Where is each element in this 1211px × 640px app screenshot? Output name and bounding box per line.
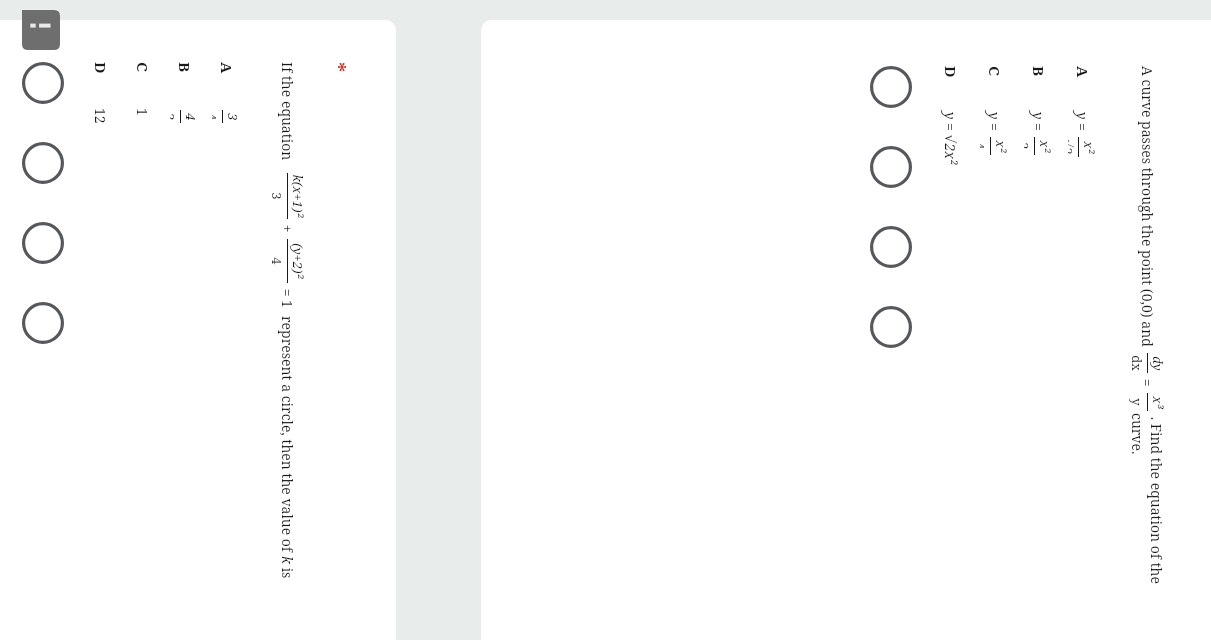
staticText: 4 — [268, 257, 286, 265]
button[interactable]: A — [1068, 66, 1098, 159]
staticText: 3 — [224, 113, 242, 121]
staticText: = 1 — [278, 285, 297, 308]
staticText: C — [985, 66, 1005, 112]
staticText: y = — [1073, 112, 1092, 135]
button[interactable]: A — [212, 62, 242, 125]
button[interactable]: D — [936, 66, 966, 165]
staticText: . Find the equation of the curve. — [1128, 413, 1166, 616]
staticText: x² — [1036, 140, 1054, 153]
staticText: √2 — [1068, 139, 1077, 155]
staticText: B — [1029, 66, 1049, 112]
button[interactable]: D — [86, 62, 116, 124]
staticText: y — [1128, 398, 1146, 406]
button[interactable]: Select option — [22, 302, 64, 344]
button[interactable]: Select option — [22, 222, 64, 264]
staticText: = — [1138, 375, 1157, 391]
staticText: y = — [1029, 112, 1048, 135]
staticText: + — [278, 221, 297, 237]
staticText: x² — [1080, 141, 1098, 154]
staticText: A curve passes through the point (0,0) a… — [1138, 66, 1157, 351]
staticText: B — [175, 62, 195, 108]
button[interactable]: More options — [22, 10, 60, 50]
staticText: y = — [985, 112, 1004, 135]
staticText: 3 — [170, 113, 179, 121]
button[interactable]: Select option — [870, 226, 912, 268]
staticText: If the equation — [278, 62, 297, 161]
staticText: 3 — [268, 192, 286, 200]
button[interactable]: Select option — [22, 142, 64, 184]
staticText: A — [1073, 66, 1093, 112]
staticText: is — [278, 564, 297, 579]
button[interactable]: C — [980, 66, 1010, 157]
button[interactable]: B — [1024, 66, 1054, 157]
staticText: * — [325, 62, 352, 73]
staticText: k — [278, 556, 297, 564]
staticText: D — [91, 62, 111, 108]
staticText: 2 — [1024, 142, 1033, 150]
staticText: D — [941, 66, 961, 112]
staticText: y = √2x² — [941, 112, 960, 165]
button[interactable]: * — [0, 20, 396, 640]
staticText: dy — [1149, 356, 1167, 371]
staticText: 12 — [91, 108, 110, 124]
button[interactable]: Select option — [870, 306, 912, 348]
staticText: x² — [992, 140, 1010, 153]
button[interactable]: A curve passes through the point (0,0) a… — [481, 20, 1211, 640]
button[interactable]: Select option — [22, 62, 64, 104]
staticText: 4 — [980, 142, 989, 150]
staticText: A — [217, 62, 237, 108]
staticText: C — [133, 62, 153, 108]
staticText: 4 — [212, 113, 221, 121]
staticText: k(x+1)² — [289, 174, 307, 218]
button[interactable]: B — [170, 62, 200, 125]
staticText: represent a circle, then the value of — [278, 316, 297, 556]
staticText: (y+2)² — [289, 243, 307, 279]
staticText: 4 — [182, 113, 200, 121]
button[interactable]: C — [128, 62, 158, 116]
button[interactable]: Select option — [870, 146, 912, 188]
staticText: dx — [1128, 355, 1146, 371]
button[interactable]: Select option — [870, 66, 912, 108]
staticText: 1 — [133, 108, 152, 116]
staticText: x³ — [1149, 396, 1167, 409]
